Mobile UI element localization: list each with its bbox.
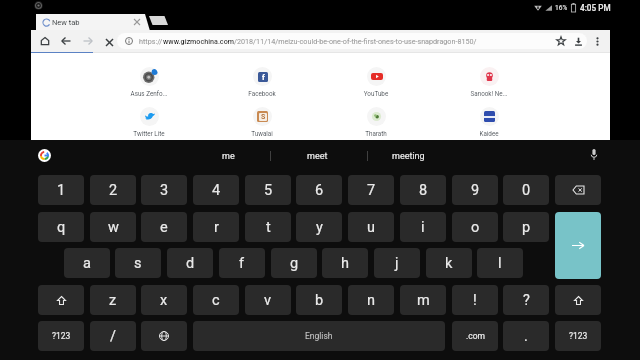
button[interactable]: f: [230, 67, 294, 97]
button[interactable]: 3: [141, 175, 187, 205]
button[interactable]: o: [452, 212, 498, 242]
button[interactable]: z: [90, 285, 136, 315]
button[interactable]: e: [141, 212, 187, 242]
button[interactable]: s: [115, 248, 161, 278]
button[interactable]: 1: [38, 175, 84, 205]
button[interactable]: .: [503, 321, 549, 351]
other: Voice input: [590, 149, 598, 160]
button[interactable]: y: [296, 212, 342, 242]
staticText: 6: [315, 182, 324, 199]
button[interactable]: 6: [296, 175, 342, 205]
staticText: o: [471, 219, 480, 236]
staticText: ?123: [52, 331, 71, 341]
button[interactable]: h: [322, 248, 368, 278]
staticText: S: [261, 113, 266, 121]
button[interactable]: f: [219, 248, 265, 278]
staticText: p: [522, 219, 531, 236]
button[interactable]: 0: [503, 175, 549, 205]
button[interactable]: q: [38, 212, 84, 242]
button[interactable]: Address bar: [117, 33, 587, 49]
button[interactable]: Sanook! Ne...: [457, 67, 521, 97]
button[interactable]: ?123: [38, 321, 84, 351]
button[interactable]: v: [245, 285, 291, 315]
staticText: 3: [160, 182, 169, 199]
button[interactable]: 4: [193, 175, 239, 205]
button[interactable]: g: [271, 248, 317, 278]
staticText: z: [109, 292, 117, 309]
staticText: meet: [307, 151, 328, 162]
button[interactable]: c: [193, 285, 239, 315]
button[interactable]: ?123: [555, 321, 601, 351]
button[interactable]: S: [230, 107, 294, 137]
button[interactable]: Bookmark: [552, 32, 570, 50]
button[interactable]: k: [426, 248, 472, 278]
button[interactable]: d: [167, 248, 213, 278]
staticText: meeting: [392, 151, 425, 162]
staticText: 4:05 PM: [580, 3, 611, 13]
button[interactable]: !: [452, 285, 498, 315]
staticText: 8: [419, 182, 428, 199]
staticText: h: [341, 255, 349, 272]
button[interactable]: More options: [588, 32, 606, 50]
button[interactable]: Google search: [38, 149, 51, 162]
button[interactable]: x: [141, 285, 187, 315]
staticText: !: [473, 292, 477, 309]
staticText: g: [290, 255, 299, 272]
button[interactable]: i: [400, 212, 446, 242]
button[interactable]: 9: [452, 175, 498, 205]
staticText: Tuwalai: [230, 130, 294, 137]
staticText: 1: [57, 182, 66, 199]
button[interactable]: Download: [569, 32, 587, 50]
staticText: q: [57, 219, 66, 236]
button[interactable]: p: [503, 212, 549, 242]
button[interactable]: b: [296, 285, 342, 315]
staticText: Sanook! Ne...: [457, 90, 521, 97]
button[interactable]: 7: [348, 175, 394, 205]
staticText: Tharath: [344, 130, 408, 137]
button[interactable]: Shift: [38, 285, 84, 315]
staticText: .: [524, 328, 528, 345]
button[interactable]: English: [193, 321, 445, 351]
button[interactable]: Twitter Lite: [117, 107, 181, 137]
button[interactable]: 8: [400, 175, 446, 205]
button[interactable]: ?: [503, 285, 549, 315]
staticText: s: [134, 255, 142, 272]
button[interactable]: m: [400, 285, 446, 315]
button[interactable]: [149, 16, 168, 25]
button[interactable]: .com: [452, 321, 498, 351]
button[interactable]: a: [64, 248, 110, 278]
button[interactable]: Enter: [555, 212, 601, 279]
button[interactable]: w: [90, 212, 136, 242]
staticText: Twitter Lite: [117, 130, 181, 137]
button[interactable]: u: [348, 212, 394, 242]
button[interactable]: 5: [245, 175, 291, 205]
button[interactable]: Stop: [100, 33, 118, 51]
button[interactable]: /: [90, 321, 136, 351]
button[interactable]: r: [193, 212, 239, 242]
button[interactable]: t: [245, 212, 291, 242]
staticText: 16%: [555, 4, 568, 12]
button[interactable]: Shift: [555, 285, 601, 315]
staticText: j: [395, 255, 399, 272]
button[interactable]: l: [477, 248, 523, 278]
button[interactable]: Close tab: [131, 16, 143, 28]
staticText: 0: [522, 182, 531, 199]
staticText: .com: [466, 331, 485, 341]
button[interactable]: Forward: [79, 32, 97, 50]
button[interactable]: New tab: [36, 14, 150, 31]
staticText: r: [214, 219, 219, 236]
button[interactable]: Back: [57, 32, 75, 50]
button[interactable]: Asus Zenfo...: [117, 67, 181, 97]
button[interactable]: Home: [36, 32, 54, 50]
button[interactable]: Kaidee: [457, 107, 521, 137]
button[interactable]: YouTube: [344, 67, 408, 97]
button[interactable]: n: [348, 285, 394, 315]
staticText: ?: [523, 292, 530, 309]
staticText: y: [316, 219, 323, 236]
button[interactable]: Change keyboard: [141, 321, 187, 351]
button[interactable]: j: [374, 248, 420, 278]
button[interactable]: Backspace: [555, 175, 601, 205]
staticText: ?123: [569, 331, 588, 341]
button[interactable]: Tharath: [344, 107, 408, 137]
button[interactable]: 2: [90, 175, 136, 205]
